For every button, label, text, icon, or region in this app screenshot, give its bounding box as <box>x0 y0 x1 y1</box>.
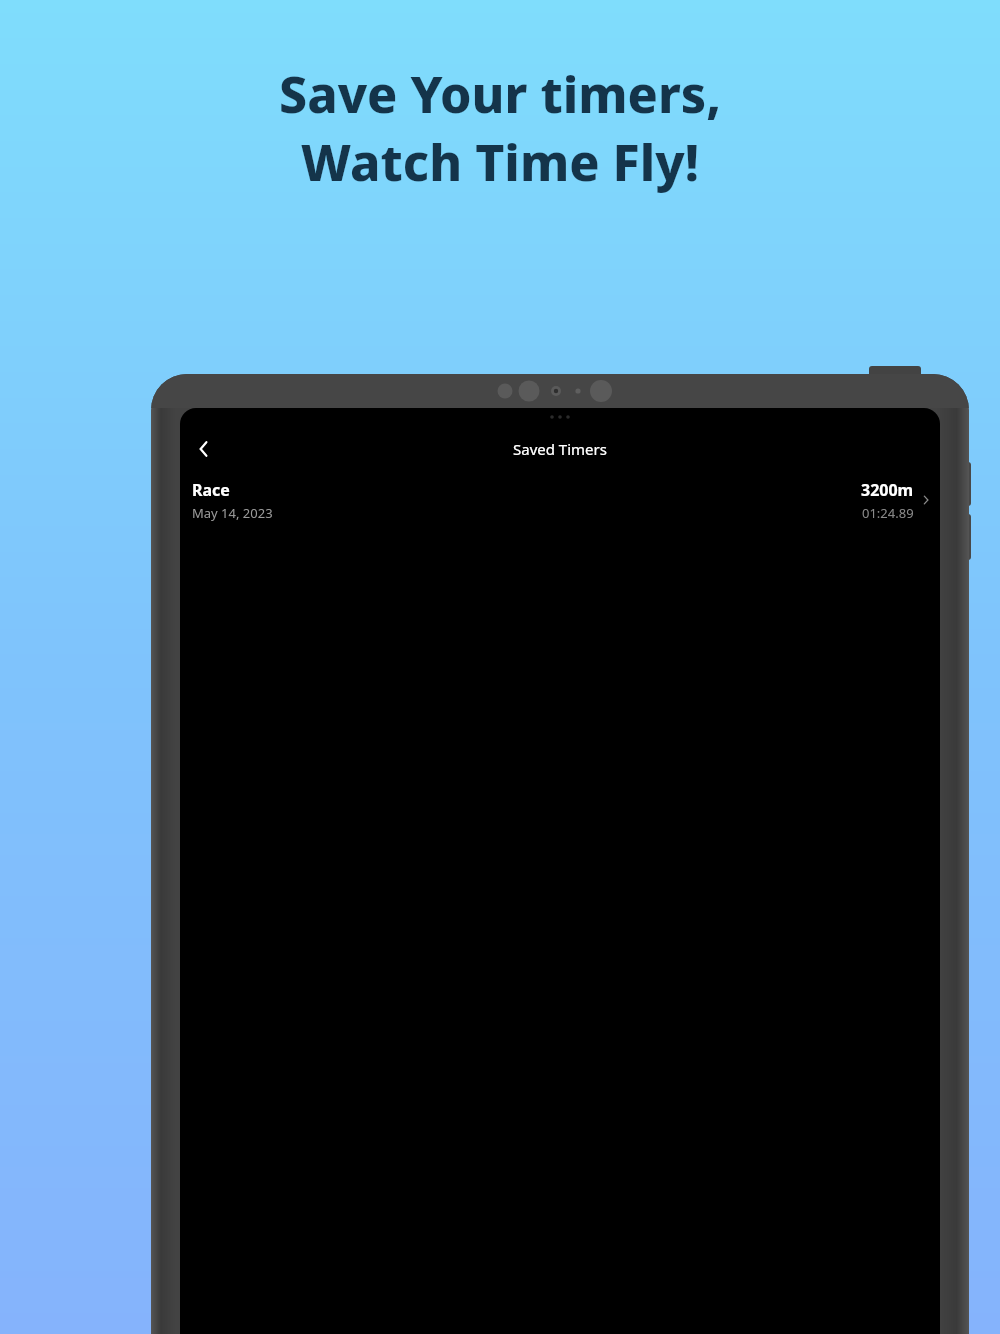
button[interactable]: Race <box>180 472 940 528</box>
staticText: 3200m <box>861 479 914 501</box>
staticText: Watch Time Fly! <box>301 128 699 196</box>
staticText: Race <box>192 479 230 501</box>
staticText: Saved Timers <box>513 439 607 459</box>
staticText: Save Your timers, <box>279 60 721 128</box>
staticText: 01:24.89 <box>862 504 914 522</box>
staticText: May 14, 2023 <box>192 504 273 522</box>
button[interactable]: Back <box>184 429 224 469</box>
